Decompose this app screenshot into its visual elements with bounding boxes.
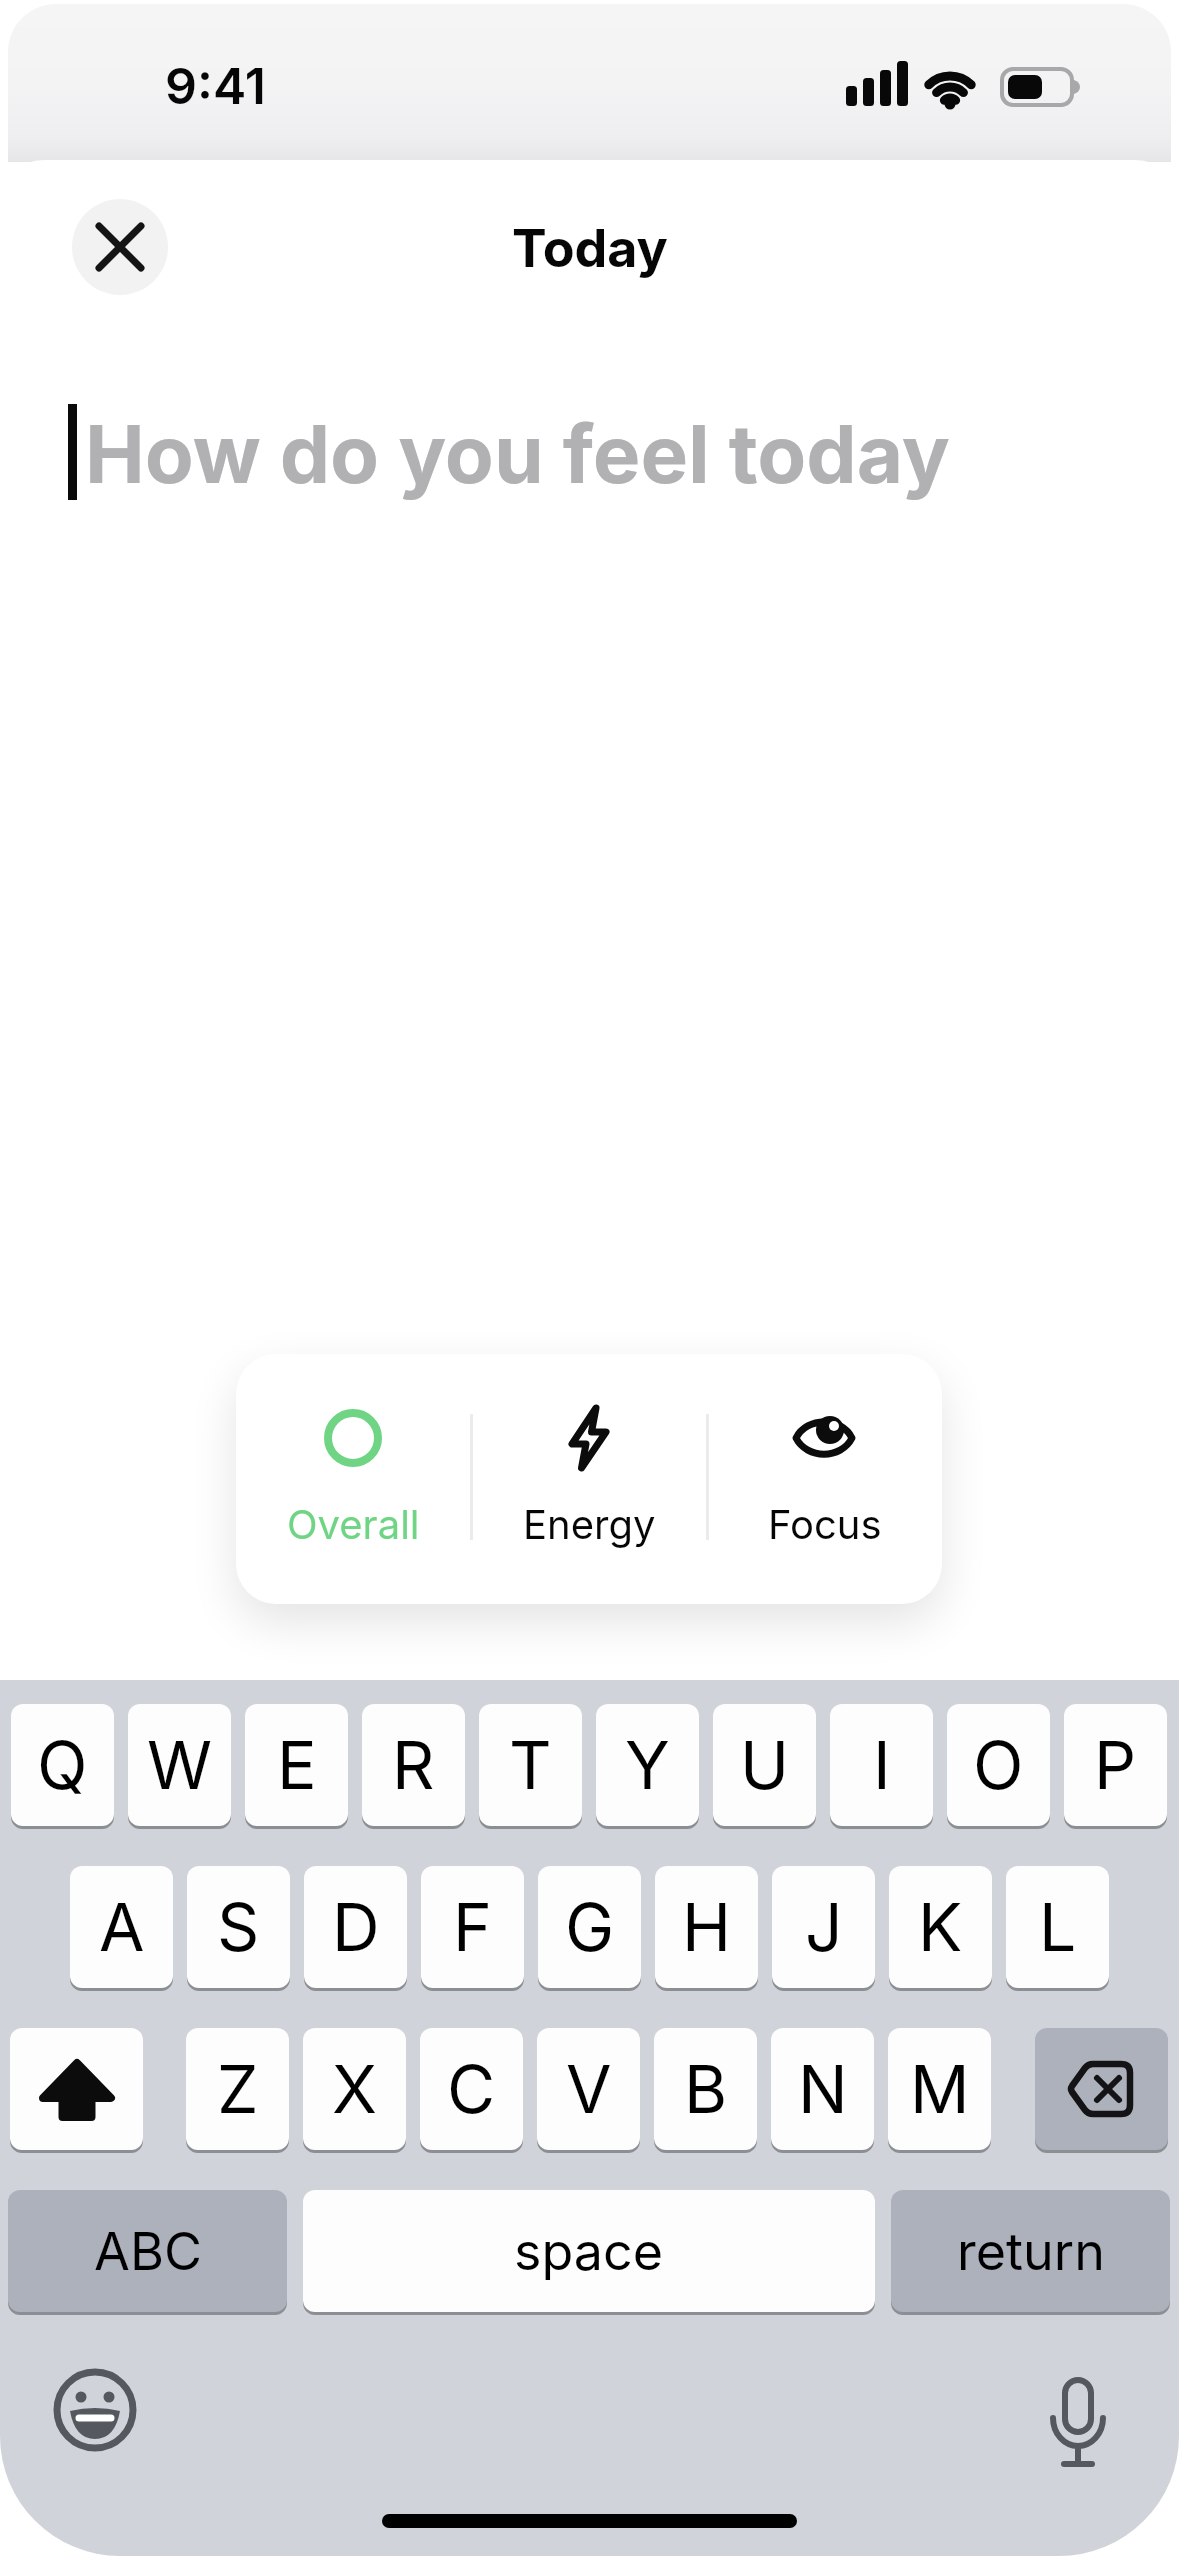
staticText: K [918, 1887, 963, 1967]
button[interactable]: F [421, 1866, 524, 1988]
staticText: L [1039, 1887, 1077, 1967]
button[interactable]: N [771, 2028, 874, 2150]
staticText: C [447, 2049, 496, 2129]
button[interactable]: W [128, 1704, 231, 1826]
button[interactable]: U [713, 1704, 816, 1826]
staticText: P [1094, 1725, 1137, 1805]
staticText: T [509, 1725, 552, 1805]
staticText: Q [37, 1725, 88, 1805]
button[interactable]: Energy [471, 1354, 707, 1604]
staticText: S [217, 1887, 260, 1967]
button[interactable]: S [187, 1866, 290, 1988]
staticText: N [798, 2049, 848, 2129]
button[interactable]: K [889, 1866, 992, 1988]
button[interactable]: R [362, 1704, 465, 1826]
button[interactable]: X [303, 2028, 406, 2150]
staticText: ABC [94, 2220, 202, 2283]
button[interactable]: Focus [707, 1354, 942, 1604]
button[interactable]: C [420, 2028, 523, 2150]
staticText: F [453, 1887, 492, 1967]
button[interactable]: T [479, 1704, 582, 1826]
button[interactable]: V [537, 2028, 640, 2150]
button[interactable]: return [891, 2190, 1170, 2312]
staticText: B [684, 2049, 728, 2129]
button[interactable]: J [772, 1866, 875, 1988]
button[interactable] [10, 2028, 143, 2150]
staticText: V [566, 2049, 612, 2129]
staticText: H [682, 1887, 732, 1967]
button[interactable] [1035, 2028, 1168, 2150]
button[interactable]: G [538, 1866, 641, 1988]
staticText: Energy [523, 1500, 656, 1548]
staticText: X [332, 2049, 378, 2129]
button[interactable] [72, 199, 168, 295]
staticText: Z [217, 2049, 259, 2129]
button[interactable]: P [1064, 1704, 1167, 1826]
button[interactable]: H [655, 1866, 758, 1988]
button[interactable]: Overall [236, 1354, 471, 1604]
staticText: O [973, 1725, 1024, 1805]
staticText: I [873, 1725, 891, 1805]
staticText: Focus [768, 1500, 882, 1548]
button[interactable]: I [830, 1704, 933, 1826]
staticText: U [740, 1725, 790, 1805]
button[interactable]: E [245, 1704, 348, 1826]
button[interactable]: A [70, 1866, 173, 1988]
button[interactable]: Q [11, 1704, 114, 1826]
button[interactable]: O [947, 1704, 1050, 1826]
staticText: Overall [287, 1500, 420, 1548]
button[interactable]: Y [596, 1704, 699, 1826]
staticText: Y [625, 1725, 670, 1805]
staticText: space [514, 2220, 664, 2283]
button[interactable]: D [304, 1866, 407, 1988]
staticText: 9:41 [165, 56, 266, 116]
button[interactable]: ABC [8, 2190, 287, 2312]
staticText: A [99, 1887, 145, 1967]
button[interactable]: M [888, 2028, 991, 2150]
staticText: G [565, 1887, 615, 1967]
staticText: J [805, 1887, 843, 1967]
button[interactable]: space [303, 2190, 875, 2312]
staticText: return [957, 2220, 1105, 2283]
staticText: W [147, 1725, 213, 1805]
staticText: D [332, 1887, 380, 1967]
staticText: M [910, 2049, 970, 2129]
button[interactable]: Z [186, 2028, 289, 2150]
staticText: E [277, 1725, 317, 1805]
button[interactable]: L [1006, 1866, 1109, 1988]
button[interactable]: B [654, 2028, 757, 2150]
staticText: Today [512, 217, 668, 280]
staticText: How do you feel today [85, 405, 950, 502]
staticText: R [392, 1725, 435, 1805]
